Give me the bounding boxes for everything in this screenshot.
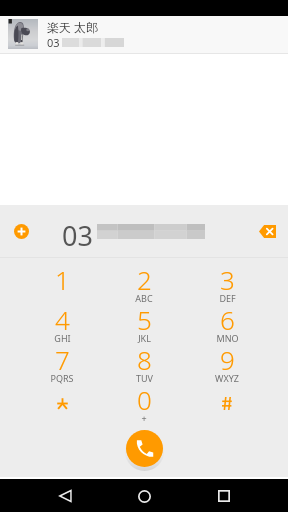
button[interactable]: Back — [50, 481, 80, 511]
button[interactable]: Call — [126, 430, 163, 467]
staticText: 4 — [55, 302, 70, 337]
staticText: 0 — [137, 382, 152, 417]
button[interactable]: 4 — [21, 301, 103, 341]
staticText: PQRS — [50, 372, 74, 384]
staticText: 2 — [137, 262, 152, 297]
button[interactable]: 0 — [103, 381, 185, 421]
staticText: 03 — [47, 35, 60, 50]
staticText: 1 — [55, 262, 70, 297]
button[interactable]: 8 — [103, 341, 185, 381]
staticText: 7 — [55, 342, 70, 377]
staticText: WXYZ — [215, 372, 239, 384]
staticText: GHI — [54, 332, 71, 344]
staticText: 5 — [137, 302, 152, 337]
staticText: TUV — [136, 372, 153, 384]
button[interactable]: Star — [21, 381, 103, 421]
button[interactable]: Pound — [186, 381, 268, 421]
staticText: ABC — [135, 292, 153, 304]
staticText: 03 — [62, 217, 93, 254]
button[interactable]: 3 — [186, 261, 268, 301]
staticText: 6 — [220, 302, 235, 337]
staticText: 楽天 太郎 — [47, 19, 99, 35]
button[interactable]: 楽天 太郎 — [0, 16, 288, 53]
staticText: JKL — [138, 332, 151, 344]
staticText: DEF — [219, 292, 236, 304]
button[interactable]: Add contact — [7, 217, 35, 245]
button[interactable]: 9 — [186, 341, 268, 381]
button[interactable]: 7 — [21, 341, 103, 381]
staticText: 9 — [220, 342, 235, 377]
button[interactable]: Backspace — [253, 217, 281, 245]
button[interactable]: Recents — [209, 481, 239, 511]
staticText: 8 — [137, 342, 152, 377]
staticText: 3 — [220, 262, 235, 297]
button[interactable]: Home — [129, 481, 159, 511]
button[interactable]: 2 — [103, 261, 185, 301]
staticText: MNO — [216, 332, 239, 344]
button[interactable]: 1 — [21, 261, 103, 301]
button[interactable]: 5 — [103, 301, 185, 341]
staticText: + — [141, 412, 147, 424]
button[interactable]: 6 — [186, 301, 268, 341]
